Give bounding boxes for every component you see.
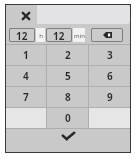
staticText: h bbox=[39, 32, 43, 40]
button[interactable]: 8 bbox=[47, 87, 88, 107]
staticText: 5 bbox=[65, 69, 71, 83]
button[interactable]: Confirm bbox=[6, 129, 130, 152]
button[interactable]: 1 bbox=[6, 45, 46, 65]
button[interactable]: Close bbox=[6, 5, 36, 24]
button[interactable]: 7 bbox=[6, 87, 46, 107]
button[interactable]: 6 bbox=[89, 66, 130, 86]
staticText: 6 bbox=[107, 69, 113, 83]
staticText: 2 bbox=[65, 48, 71, 62]
button[interactable]: 2 bbox=[47, 45, 88, 65]
staticText: 9 bbox=[107, 90, 113, 104]
staticText: 3 bbox=[107, 48, 113, 62]
staticText: 4 bbox=[23, 69, 29, 83]
staticText: 12 bbox=[53, 29, 65, 41]
button[interactable]: 4 bbox=[6, 66, 46, 86]
staticText: 7 bbox=[23, 90, 29, 104]
button[interactable]: 0 bbox=[47, 108, 88, 128]
staticText: 0 bbox=[65, 111, 71, 125]
button[interactable]: 12 bbox=[10, 29, 34, 41]
staticText: 8 bbox=[65, 90, 71, 104]
staticText: 12 bbox=[16, 29, 28, 41]
staticText: 1 bbox=[23, 48, 29, 62]
button[interactable]: 3 bbox=[89, 45, 130, 65]
button[interactable]: 5 bbox=[47, 66, 88, 86]
button[interactable]: 9 bbox=[89, 87, 130, 107]
staticText: min bbox=[74, 32, 85, 40]
button[interactable]: Backspace bbox=[92, 29, 122, 41]
button[interactable]: 12 bbox=[47, 29, 71, 41]
